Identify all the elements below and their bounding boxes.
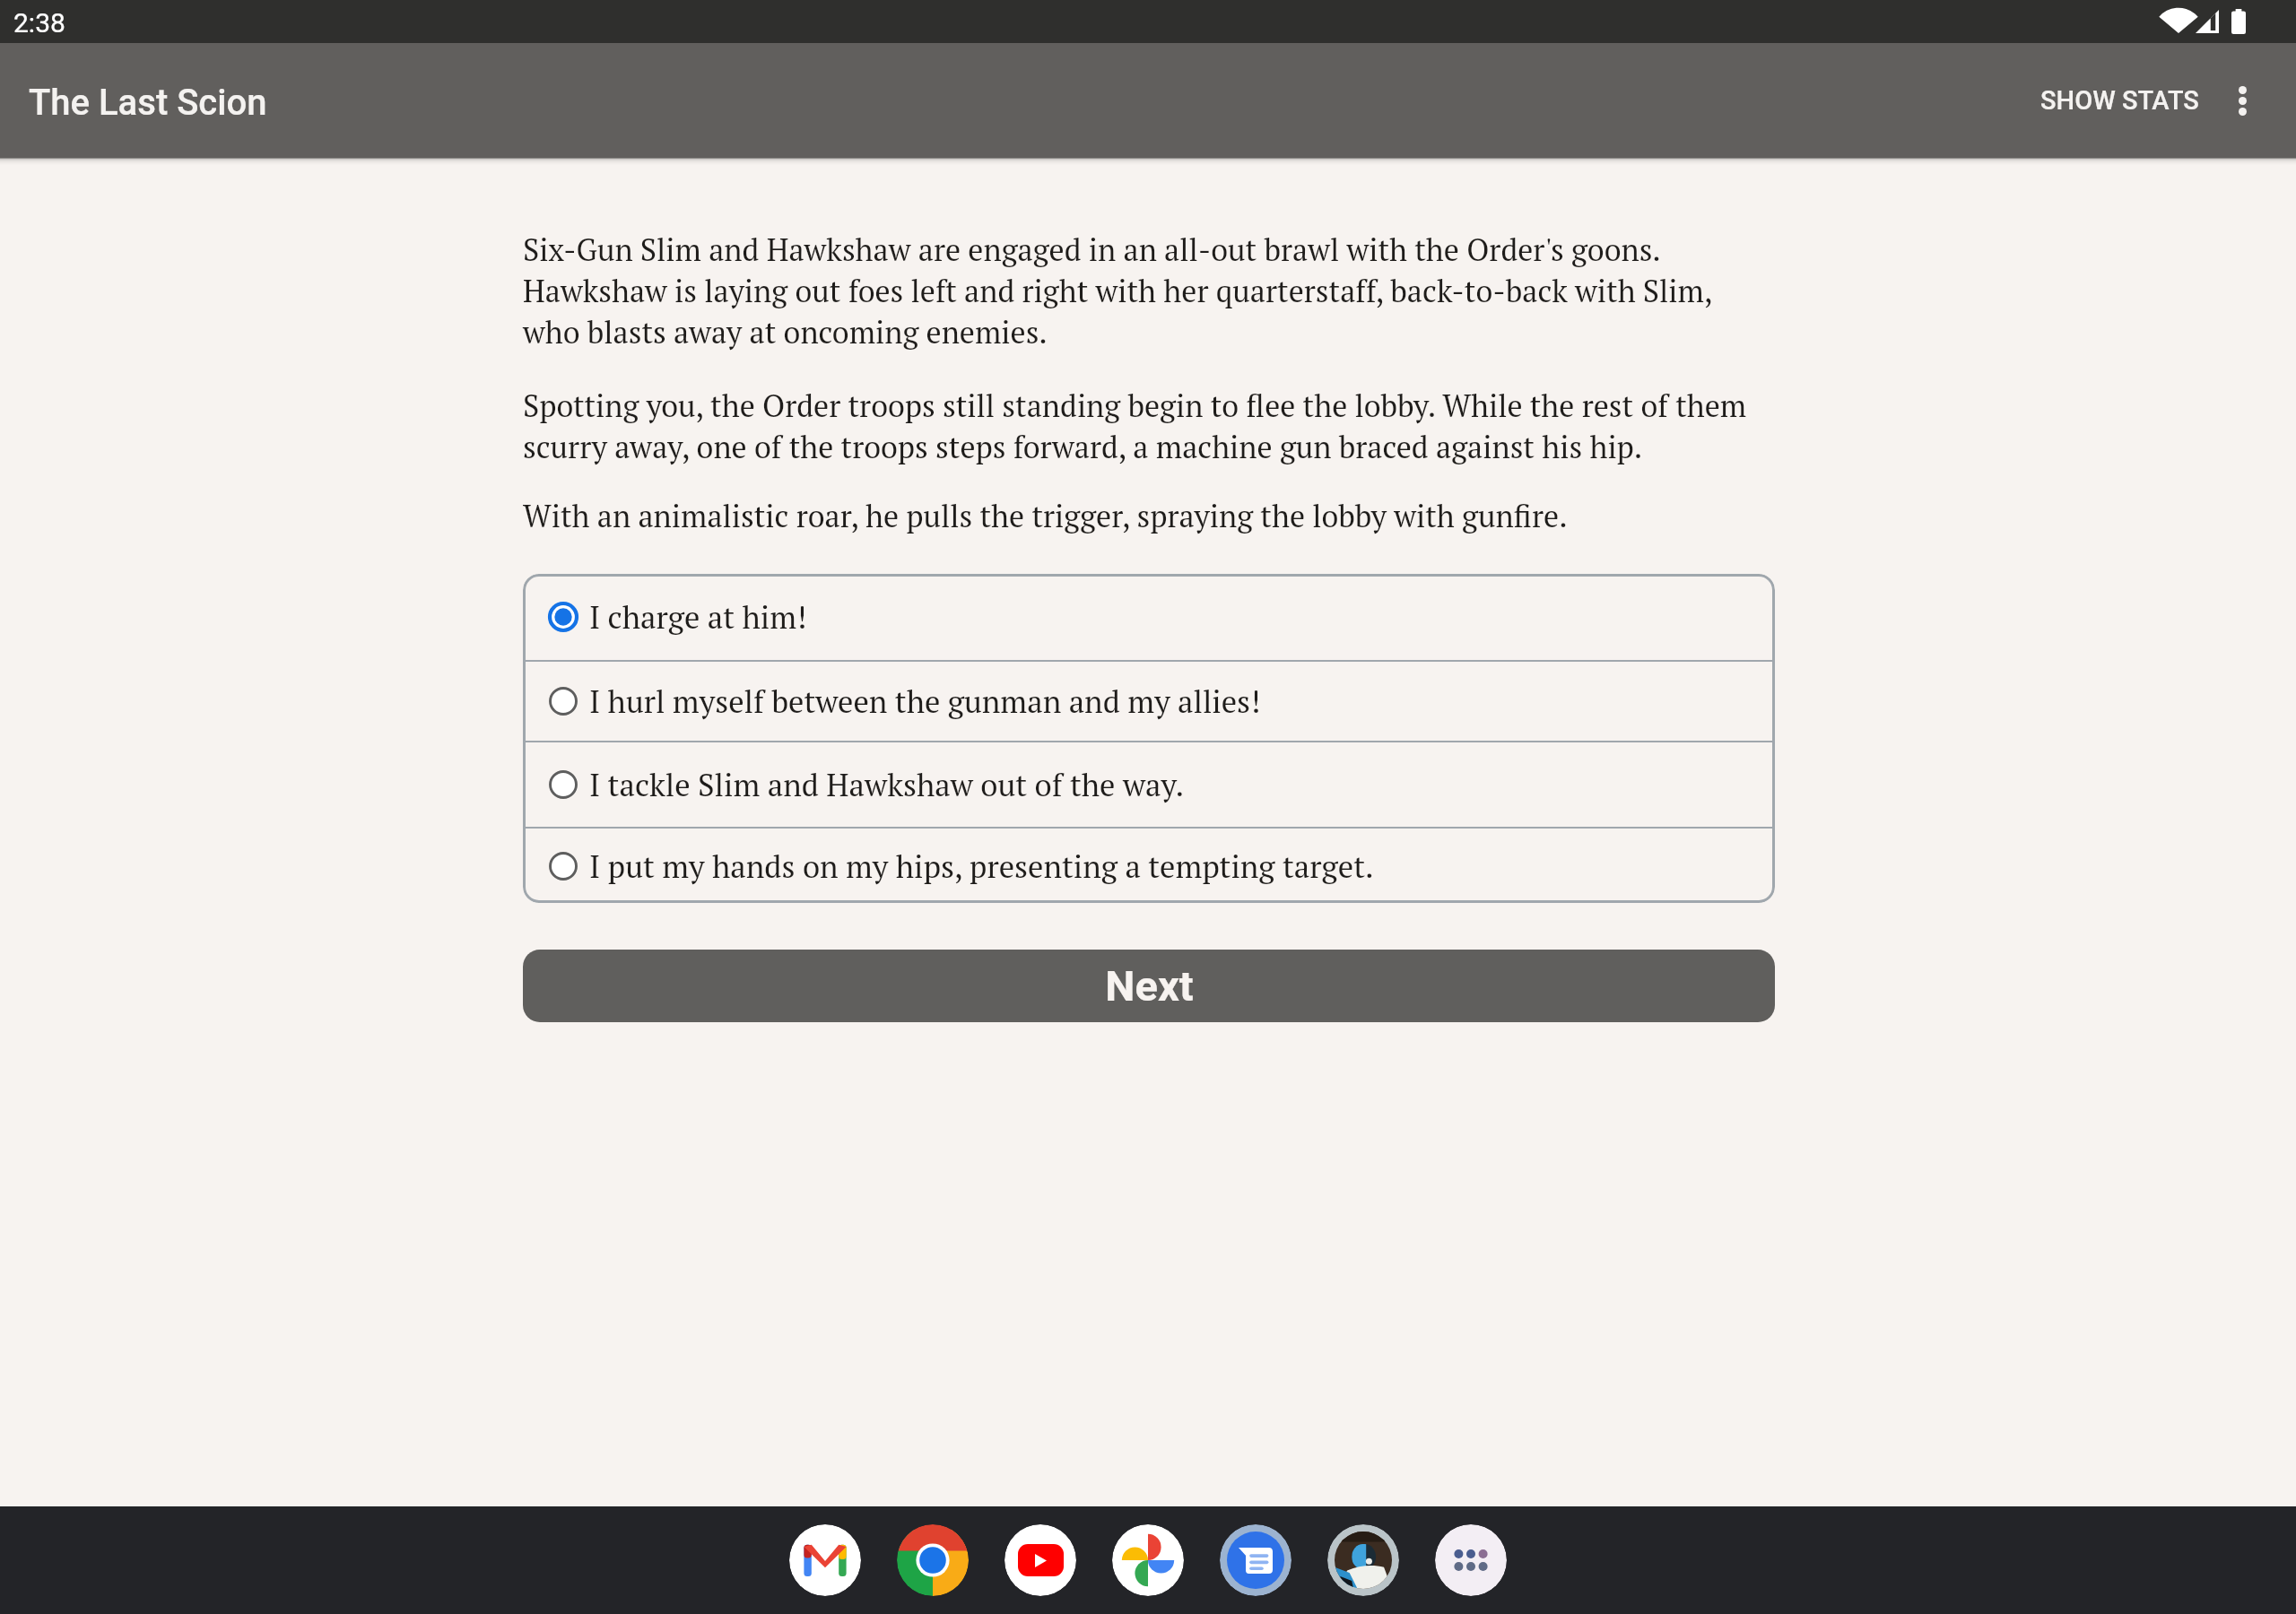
staticText: Next bbox=[1105, 961, 1194, 1011]
button[interactable]: I hurl myself between the gunman and my … bbox=[523, 662, 1775, 741]
staticText: I tackle Slim and Hawkshaw out of the wa… bbox=[589, 764, 1185, 805]
staticText: I hurl myself between the gunman and my … bbox=[589, 681, 1261, 722]
button[interactable]: Photos bbox=[1112, 1524, 1184, 1596]
staticText: I charge at him! bbox=[589, 596, 807, 638]
button[interactable]: More options bbox=[2199, 57, 2285, 143]
staticText: Spotting you, the Order troops still sta… bbox=[523, 386, 1775, 467]
button[interactable]: I charge at him! bbox=[523, 574, 1775, 660]
staticText: Six-Gun Slim and Hawkshaw are engaged in… bbox=[523, 230, 1775, 352]
button[interactable]: All apps bbox=[1435, 1524, 1507, 1596]
button[interactable]: I tackle Slim and Hawkshaw out of the wa… bbox=[523, 742, 1775, 827]
staticText: With an animalistic roar, he pulls the t… bbox=[523, 496, 1568, 536]
staticText: I put my hands on my hips, presenting a … bbox=[589, 846, 1374, 887]
button[interactable]: Next bbox=[523, 950, 1775, 1022]
staticText: 2:38 bbox=[13, 7, 65, 39]
button[interactable]: The Last Scion bbox=[1327, 1524, 1399, 1596]
button[interactable]: YouTube bbox=[1004, 1524, 1076, 1596]
button[interactable]: Gmail bbox=[789, 1524, 861, 1596]
button[interactable]: SHOW STATS bbox=[2018, 64, 2199, 137]
button[interactable]: Chrome bbox=[897, 1524, 969, 1596]
staticText: SHOW STATS bbox=[2040, 85, 2199, 116]
staticText: The Last Scion bbox=[29, 82, 267, 124]
button[interactable]: I put my hands on my hips, presenting a … bbox=[523, 829, 1775, 903]
button[interactable]: Messages bbox=[1220, 1524, 1291, 1596]
